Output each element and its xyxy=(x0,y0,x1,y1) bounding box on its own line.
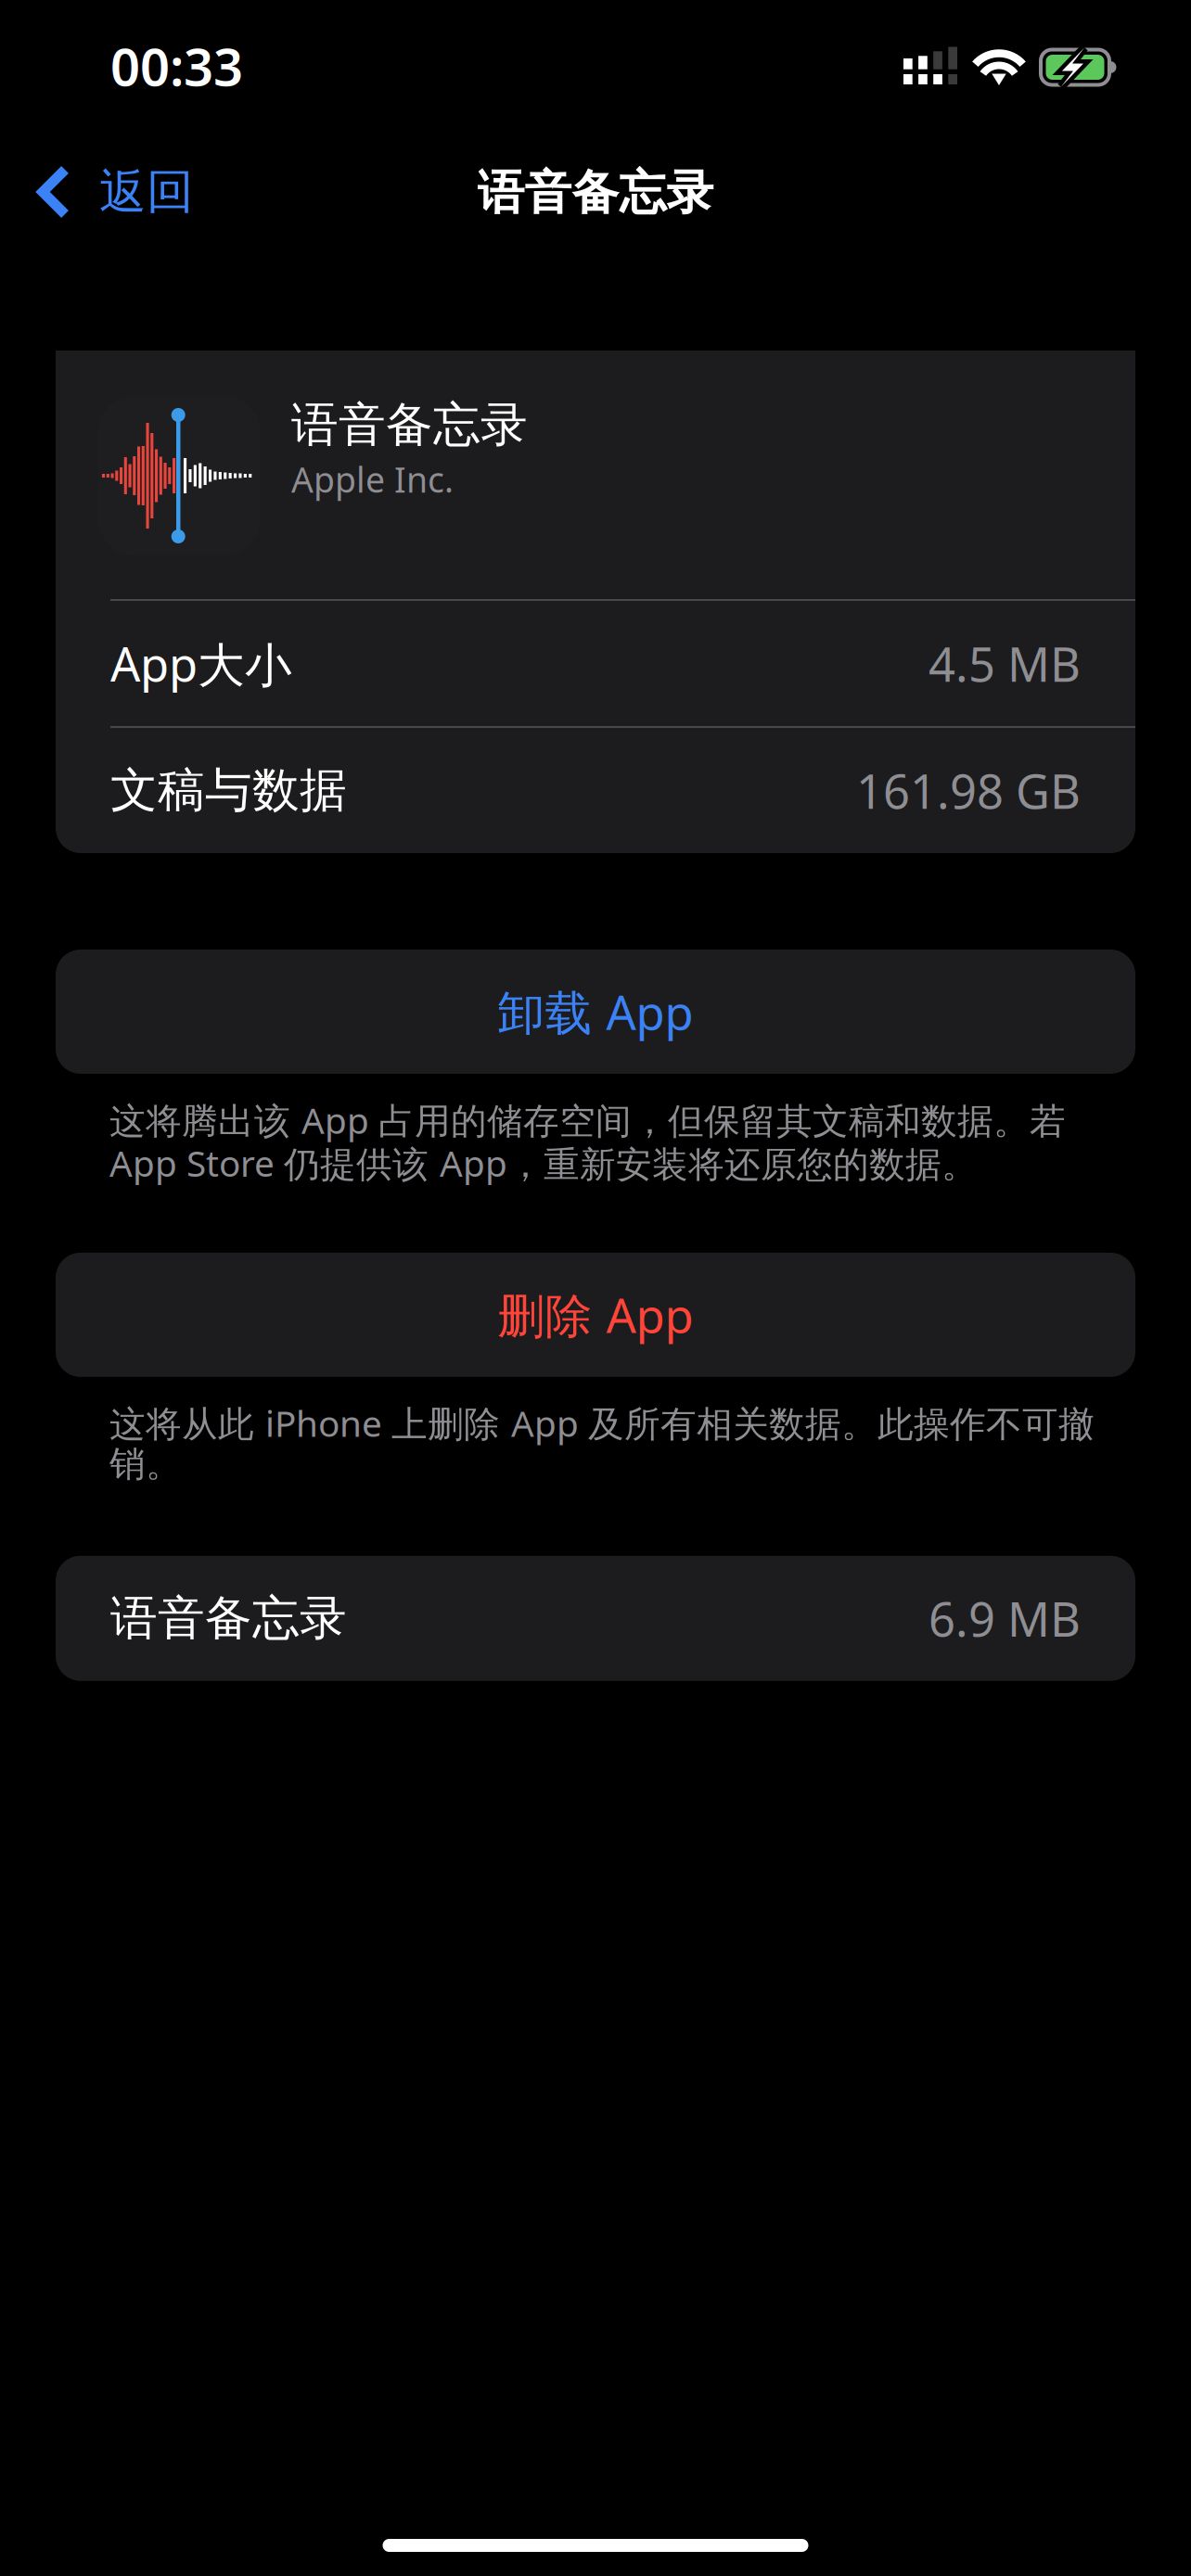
staticText: 卸载 App xyxy=(498,981,693,1043)
staticText: 4.5 MB xyxy=(928,632,1081,695)
button[interactable]: 删除 App xyxy=(56,1253,1135,1377)
staticText: 161.98 GB xyxy=(856,759,1081,822)
staticText: 删除 App xyxy=(498,1284,693,1346)
staticText: 6.9 MB xyxy=(928,1587,1081,1650)
staticText: 语音备忘录 xyxy=(291,396,528,454)
staticText: 文稿与数据 xyxy=(110,762,347,819)
button[interactable]: 返回 xyxy=(0,148,216,230)
staticText: 语音备忘录 xyxy=(110,1589,347,1647)
staticText: 00:33 xyxy=(110,31,243,100)
staticText: Apple Inc. xyxy=(291,456,454,502)
staticText: 这将腾出该 App 占用的储存空间，但保留其文稿和数据。若 App Store … xyxy=(109,1096,1066,1187)
staticText: 语音备忘录 xyxy=(477,164,714,222)
staticText: 这将从此 iPhone 上删除 App 及所有相关数据。此操作不可撤销。 xyxy=(109,1399,1095,1486)
button[interactable]: 卸载 App xyxy=(56,950,1135,1074)
staticText: 返回 xyxy=(99,163,194,221)
staticText: App大小 xyxy=(110,632,292,695)
